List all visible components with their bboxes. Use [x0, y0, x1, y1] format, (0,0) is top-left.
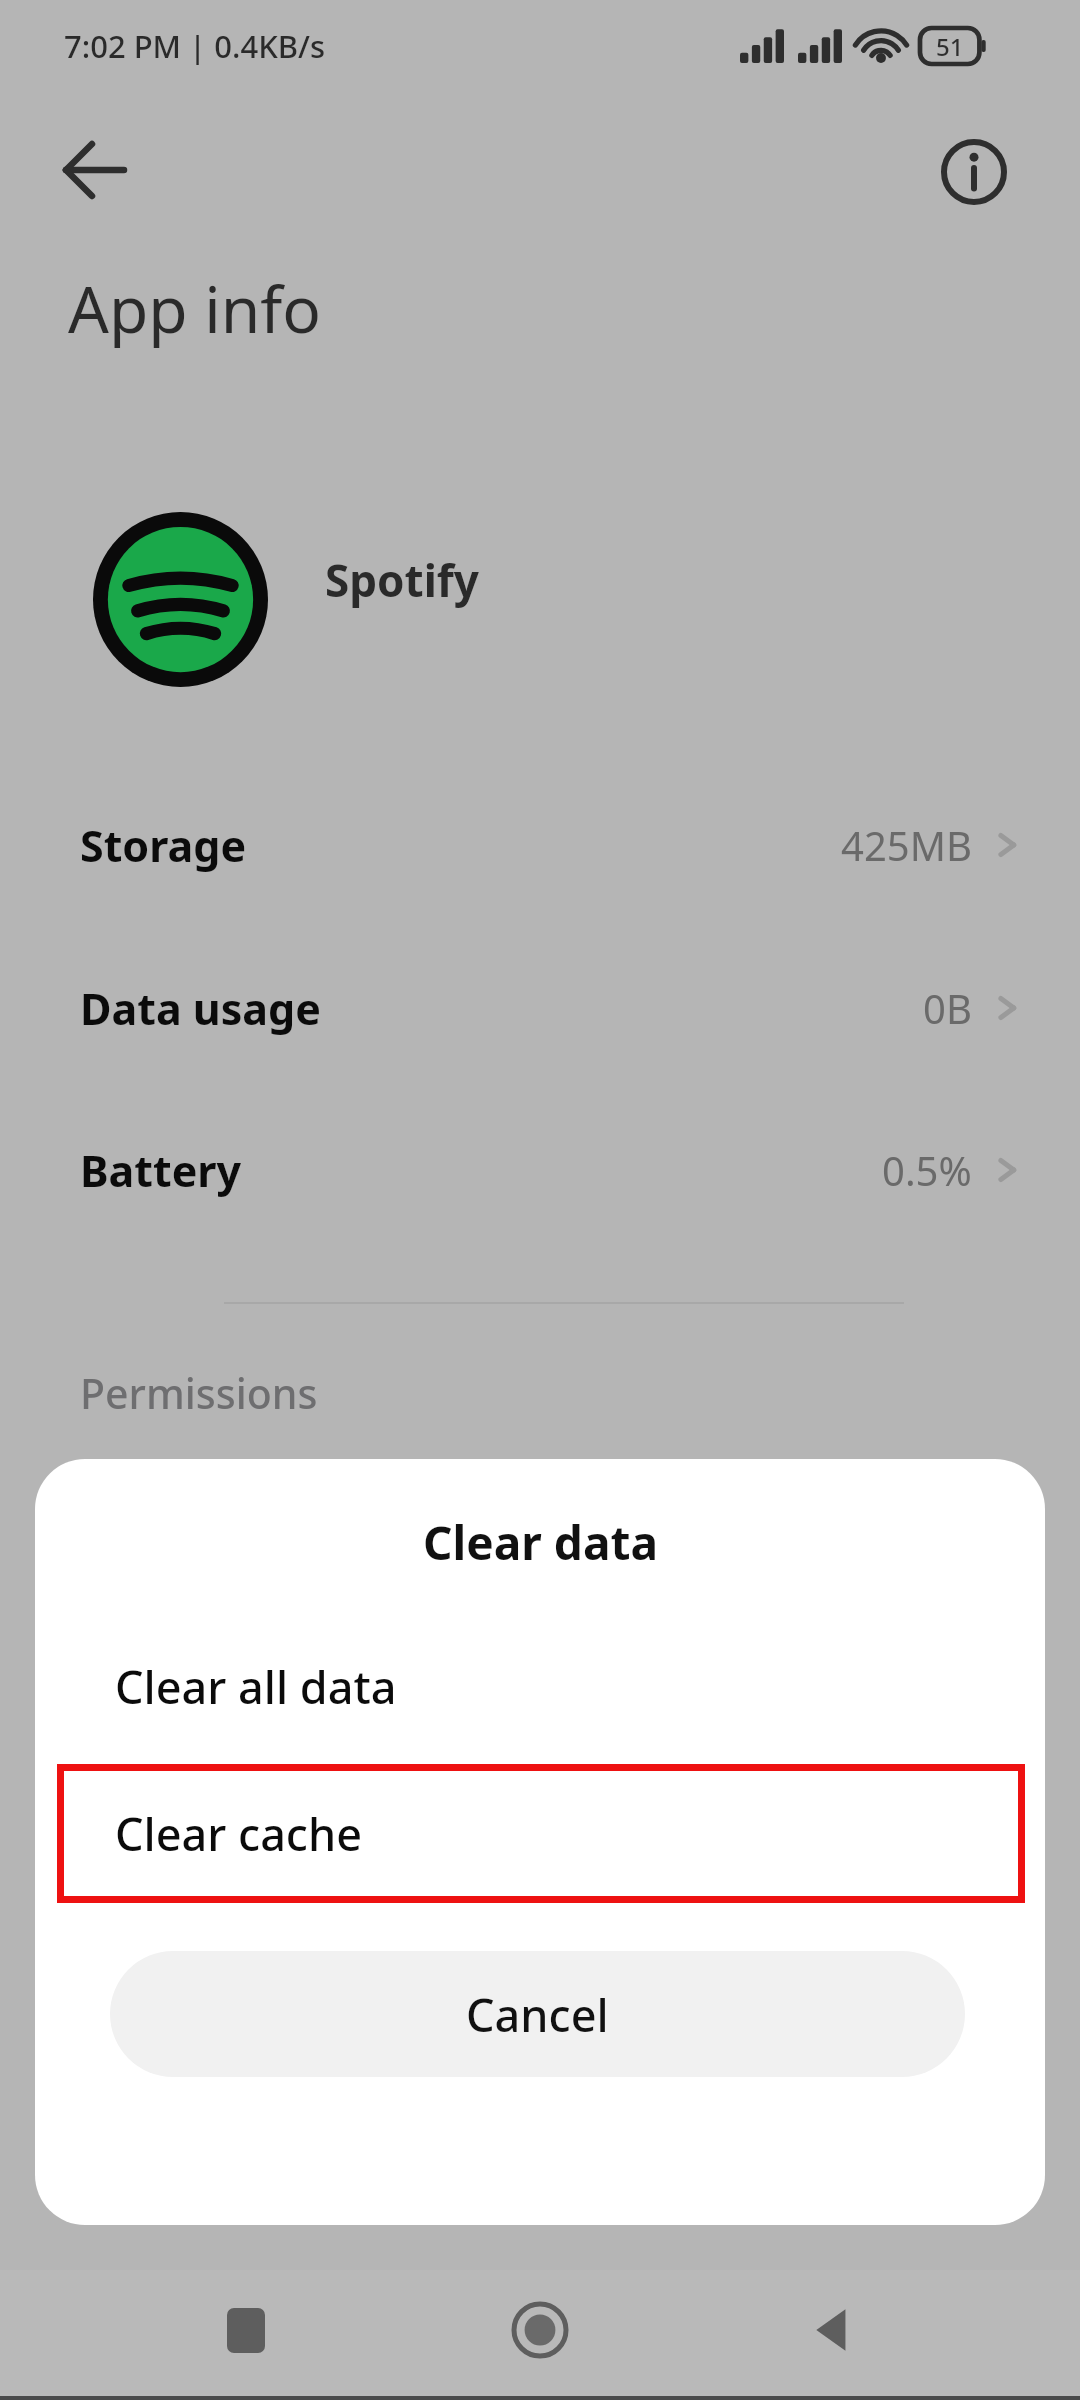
- button[interactable]: Clear cache: [57, 1764, 1025, 1903]
- staticText: Permissions: [80, 1365, 318, 1421]
- staticText: 425MB: [841, 818, 972, 872]
- staticText: 7:02 PM | 0.4KB/s: [64, 25, 326, 67]
- staticText: Clear cache: [115, 1803, 363, 1864]
- button[interactable]: Back: [46, 120, 146, 220]
- button[interactable]: Cancel: [110, 1951, 965, 2077]
- staticText: App info: [68, 265, 322, 352]
- staticText: Battery: [80, 1141, 242, 1200]
- button[interactable]: Storage: [0, 790, 1080, 900]
- staticText: Clear all data: [115, 1656, 397, 1717]
- button[interactable]: Clear all data: [35, 1609, 1045, 1764]
- button[interactable]: Battery: [0, 1115, 1080, 1225]
- staticText: Clear data: [423, 1511, 658, 1574]
- button[interactable]: Back: [786, 2282, 882, 2378]
- staticText: 0B: [923, 981, 972, 1035]
- staticText: 0.5%: [882, 1143, 972, 1197]
- button[interactable]: App details: [926, 124, 1022, 220]
- staticText: Spotify: [325, 550, 479, 610]
- staticText: Data usage: [80, 979, 321, 1038]
- staticText: Storage: [80, 816, 247, 875]
- button[interactable]: Recent apps: [198, 2282, 294, 2378]
- button[interactable]: Data usage: [0, 953, 1080, 1063]
- staticText: Cancel: [466, 1984, 609, 2045]
- button[interactable]: Home: [492, 2282, 588, 2378]
- staticText: 51: [936, 30, 964, 63]
